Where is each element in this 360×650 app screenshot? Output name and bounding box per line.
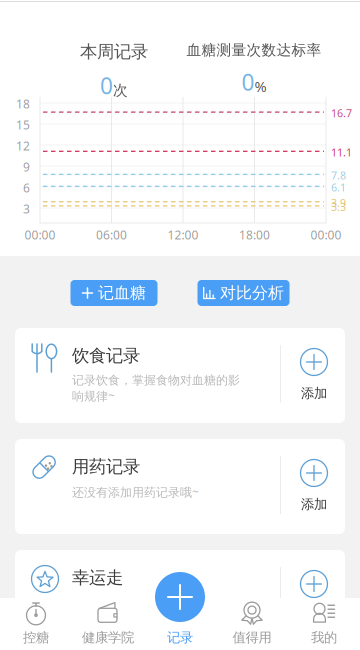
staticText: 添加 [301,607,327,623]
staticText: 添加 [301,385,327,401]
staticText: 记血糖 [98,283,146,303]
staticText: 3 [23,201,30,217]
staticText: 6.1 [331,180,346,194]
staticText: 00:00 [310,227,341,243]
button[interactable]: 饮食记录 [15,328,345,423]
button[interactable]: 添加记录 [155,572,205,622]
staticText: 9 [23,159,30,175]
staticText: 16.7 [331,106,352,120]
staticText: 记录 [167,629,193,646]
staticText: 15 [16,117,30,133]
staticText: 6 [23,180,30,196]
button[interactable]: 记录 [144,598,216,650]
button[interactable]: 记血糖 [70,280,157,306]
button[interactable]: 我的 [288,598,360,650]
staticText: 7.8 [331,168,346,183]
staticText: 本周记录 [80,41,148,62]
staticText: 值得用 [232,629,271,646]
staticText: 记录饮食，掌握食物对血糖的影响规律~ [72,373,240,404]
staticText: 06:00 [96,227,127,243]
staticText: 血糖测量次数达标率 [186,41,321,59]
staticText: 3.9 [331,196,346,210]
staticText: % [254,77,266,96]
staticText: 18 [16,96,30,112]
staticText: 00:00 [24,227,55,243]
staticText: 我的 [311,629,337,646]
staticText: 3.3 [331,200,346,214]
staticText: 还没有添加用药记录哦~ [72,484,199,500]
staticText: 饮食记录 [72,345,140,366]
button[interactable]: 用药记录 [15,439,345,534]
staticText: 对比分析 [220,283,284,303]
staticText: 0 [100,70,113,100]
staticText: 12:00 [167,227,198,243]
button[interactable]: 对比分析 [197,280,289,306]
button[interactable]: 幸运走 [15,550,345,645]
staticText: 次 [113,81,128,99]
staticText: 控糖 [23,629,49,646]
staticText: 11.1 [331,145,352,159]
staticText: 用药记录 [72,456,140,477]
staticText: 幸运走 [72,567,123,588]
staticText: 0 [241,67,254,97]
staticText: 添加 [301,496,327,512]
staticText: 18:00 [239,227,270,243]
button[interactable]: 控糖 [0,598,72,650]
staticText: 健康学院 [82,629,134,646]
button[interactable]: 值得用 [216,598,288,650]
button[interactable]: 健康学院 [72,598,144,650]
staticText: 12 [16,138,30,154]
